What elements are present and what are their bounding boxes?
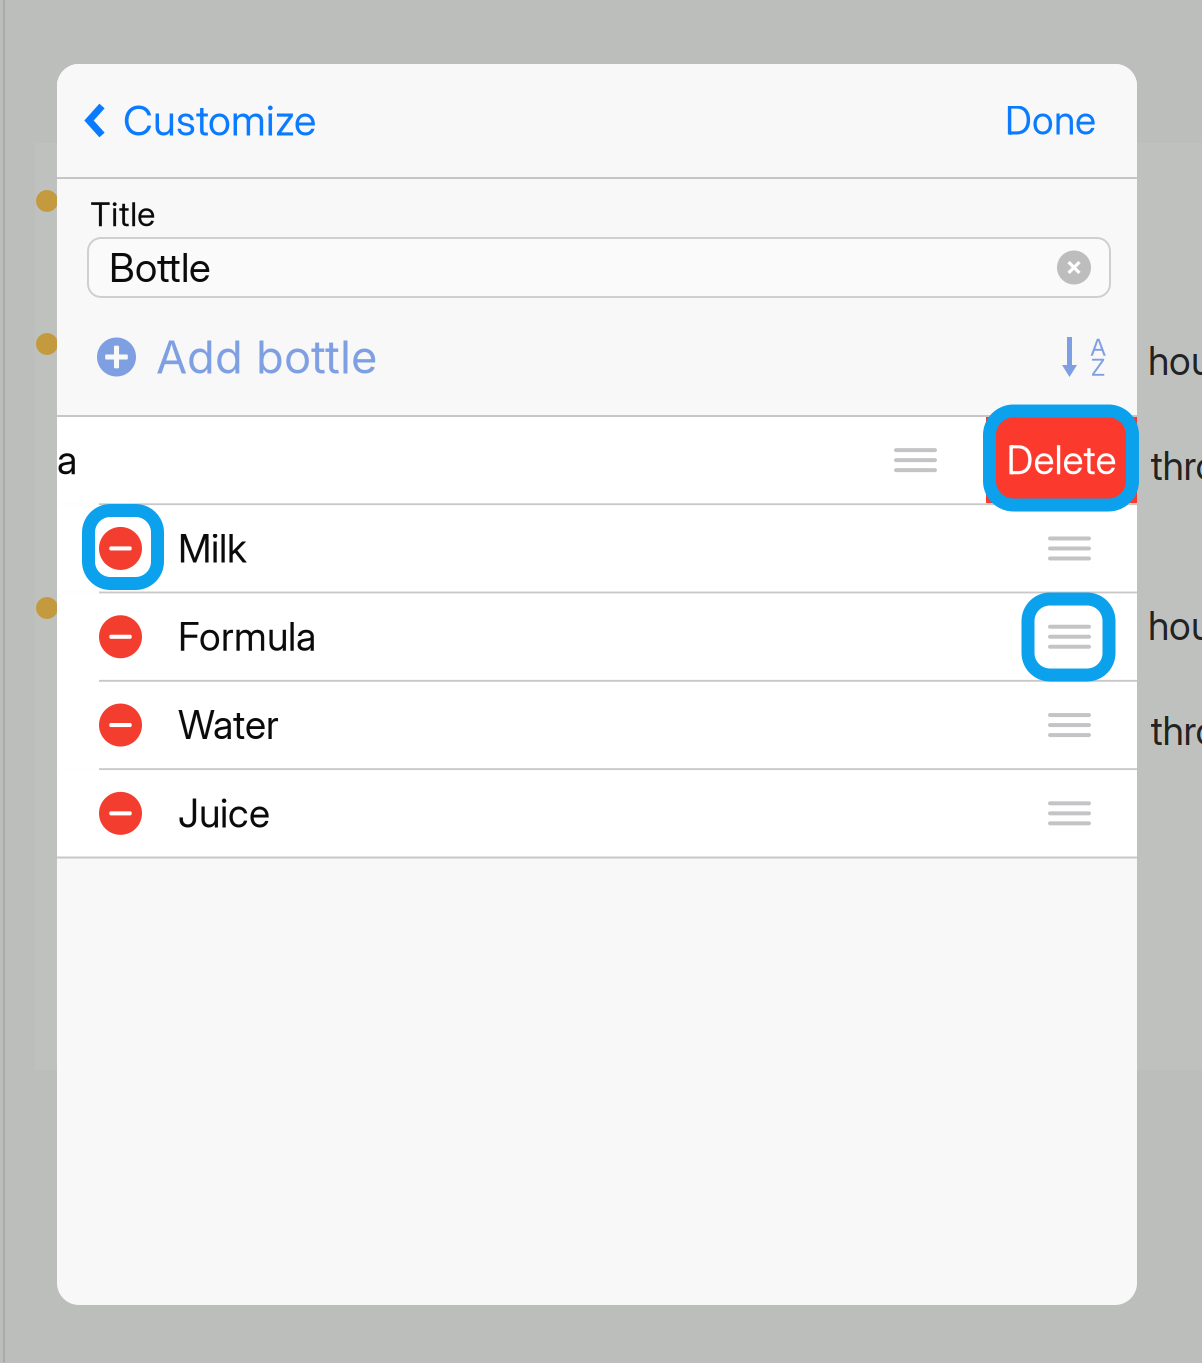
staticText: Delete — [1006, 437, 1116, 484]
button[interactable]: Milk — [57, 505, 1137, 592]
staticText: Water — [178, 702, 279, 748]
button[interactable]: Water — [57, 682, 1137, 768]
staticText: Z — [1090, 352, 1105, 381]
staticText: Milk — [178, 525, 247, 572]
staticText: Formula — [178, 613, 316, 660]
staticText: hours — [1148, 338, 1202, 384]
staticText: throat — [1150, 443, 1202, 489]
button[interactable]: Clear text — [1057, 238, 1110, 296]
button[interactable]: Delete — [986, 417, 1137, 503]
button[interactable]: Done — [975, 64, 1137, 177]
staticText: a — [57, 437, 77, 484]
staticText: Done — [1005, 97, 1096, 144]
button[interactable]: Sort alphabetically — [1063, 328, 1137, 386]
staticText: hours — [1148, 603, 1202, 649]
staticText: Juice — [178, 790, 270, 837]
staticText: Title — [90, 194, 155, 234]
staticText: A — [1090, 332, 1106, 361]
staticText: Bottle — [109, 243, 211, 292]
button[interactable]: Customize — [57, 64, 336, 177]
button[interactable]: Add bottle — [57, 328, 377, 386]
button[interactable]: Formula — [57, 594, 1137, 680]
staticText: Add bottle — [156, 330, 377, 384]
staticText: Customize — [123, 95, 316, 145]
button[interactable]: Juice — [57, 770, 1137, 856]
staticText: throat — [1150, 708, 1202, 754]
